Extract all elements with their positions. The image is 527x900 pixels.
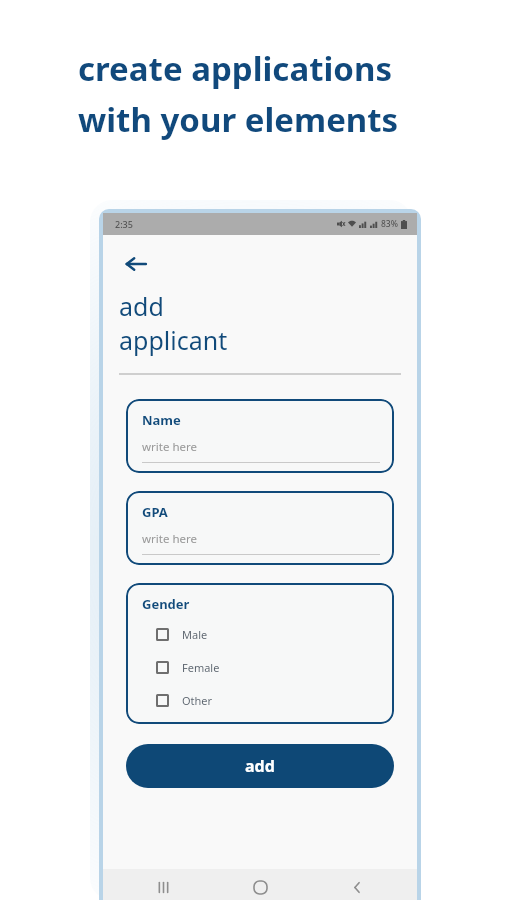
button[interactable]: Recent apps bbox=[149, 873, 177, 900]
button[interactable]: Other bbox=[142, 691, 380, 710]
staticText: Female bbox=[182, 660, 220, 675]
button[interactable]: Home bbox=[246, 873, 274, 900]
staticText: Gender bbox=[142, 595, 190, 613]
button[interactable]: GPA bbox=[126, 491, 394, 565]
staticText: add bbox=[245, 755, 275, 777]
button[interactable]: Back bbox=[343, 873, 371, 900]
staticText: Male bbox=[182, 627, 208, 642]
button[interactable]: add bbox=[126, 744, 394, 788]
staticText: 83% bbox=[381, 218, 398, 230]
button[interactable]: Female bbox=[142, 658, 380, 677]
button[interactable]: Name bbox=[126, 399, 394, 473]
staticText: write here bbox=[142, 531, 197, 547]
staticText: with your elements bbox=[78, 97, 399, 142]
staticText: add bbox=[119, 289, 164, 323]
staticText: write here bbox=[142, 439, 197, 455]
staticText: Other bbox=[182, 693, 213, 708]
staticText: Name bbox=[142, 411, 181, 429]
staticText: GPA bbox=[142, 503, 168, 521]
staticText: applicant bbox=[119, 323, 228, 357]
staticText: 2:35 bbox=[115, 218, 133, 230]
staticText: create applications bbox=[78, 46, 392, 91]
button[interactable]: Back bbox=[119, 247, 153, 281]
button[interactable]: Male bbox=[142, 625, 380, 644]
